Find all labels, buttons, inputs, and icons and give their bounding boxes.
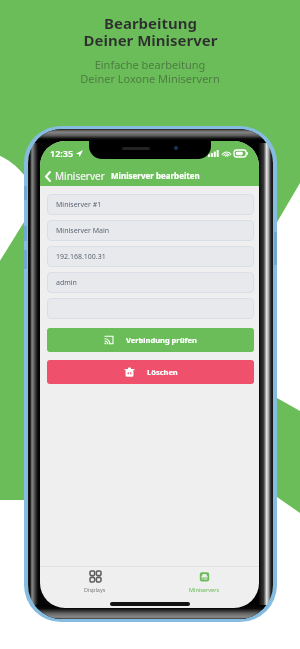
button[interactable]: Displays xyxy=(40,567,149,597)
staticText: admin xyxy=(56,278,77,288)
staticText: 12:35 xyxy=(50,147,74,159)
staticText: Einfache bearbeitung Deiner Loxone Minis… xyxy=(80,57,220,86)
button[interactable]: Löschen xyxy=(47,360,254,384)
button[interactable]: Miniserver Main xyxy=(47,220,254,241)
button[interactable] xyxy=(47,298,254,319)
button[interactable]: 192.168.100.31 xyxy=(47,246,254,267)
button[interactable]: admin xyxy=(47,272,254,293)
button[interactable]: Miniservers xyxy=(149,567,259,597)
staticText: Miniserver bearbeiten xyxy=(111,170,200,181)
staticText: Bearbeitung Deiner Miniserver xyxy=(83,13,218,51)
staticText: Miniservers xyxy=(189,586,220,593)
staticText: Miniserver #1 xyxy=(56,200,102,210)
staticText: Displays xyxy=(84,586,106,593)
staticText: Verbindung prüfen xyxy=(126,335,197,345)
staticText: Miniserver xyxy=(55,169,105,183)
button[interactable]: Miniserver #1 xyxy=(47,194,254,215)
staticText: 192.168.100.31 xyxy=(56,252,106,262)
button[interactable]: Verbindung prüfen xyxy=(47,328,254,352)
staticText: Miniserver Main xyxy=(56,226,110,236)
button[interactable]: Miniserver xyxy=(40,167,111,185)
staticText: Löschen xyxy=(147,367,178,377)
